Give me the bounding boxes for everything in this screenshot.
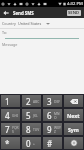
button[interactable]: 7	[1, 123, 20, 135]
button[interactable]: Next	[64, 109, 83, 121]
button[interactable]: Country	[0, 18, 84, 28]
button[interactable]: 8	[22, 123, 41, 135]
staticText: 5	[26, 110, 31, 121]
staticText: Country	[2, 21, 16, 26]
staticText: #	[47, 138, 53, 149]
button[interactable]: #	[43, 137, 62, 149]
button[interactable]: 9	[43, 123, 62, 135]
staticText: 9	[47, 124, 52, 135]
button[interactable]: 1	[1, 95, 20, 107]
staticText: +	[33, 141, 35, 145]
staticText: 0	[26, 138, 31, 149]
staticText: Message	[2, 42, 18, 47]
button[interactable]: 3	[43, 95, 62, 107]
staticText: GHI	[12, 113, 18, 117]
staticText: 2	[26, 96, 31, 107]
staticText: MNO	[54, 111, 62, 119]
staticText: Send SMS	[13, 10, 34, 16]
staticText: DEF	[54, 99, 60, 103]
button[interactable]: 0	[22, 137, 41, 149]
staticText: 7	[5, 124, 10, 135]
button[interactable]: SEND	[67, 10, 81, 16]
staticText: WXYZ	[54, 125, 62, 133]
staticText: 3	[47, 96, 52, 107]
staticText: 1	[5, 96, 10, 107]
button[interactable]: 5	[22, 109, 41, 121]
button[interactable]: 6	[43, 109, 62, 121]
staticText: TUV	[33, 127, 40, 131]
staticText: SEND	[68, 10, 80, 16]
staticText: PQRS	[12, 125, 20, 133]
staticText: 4	[5, 110, 10, 121]
staticText: 4:32 PM	[67, 1, 83, 7]
staticText: ABC	[33, 99, 40, 103]
staticText: United States	[18, 21, 42, 26]
staticText: *	[5, 138, 10, 149]
staticText: To:	[2, 30, 8, 35]
button[interactable]: Backspace	[64, 95, 83, 107]
button[interactable]: Sym	[64, 123, 83, 135]
button[interactable]: Back	[0, 7, 12, 18]
staticText: 8	[26, 124, 31, 135]
button[interactable]: 2	[22, 95, 41, 107]
button[interactable]: 4	[1, 109, 20, 121]
staticText: 6	[47, 110, 52, 121]
staticText: Next	[67, 112, 80, 119]
staticText: JKL	[33, 113, 38, 117]
staticText: Sym	[68, 126, 79, 133]
button[interactable]: Keyboard settings	[64, 137, 83, 149]
button[interactable]: *	[1, 137, 20, 149]
